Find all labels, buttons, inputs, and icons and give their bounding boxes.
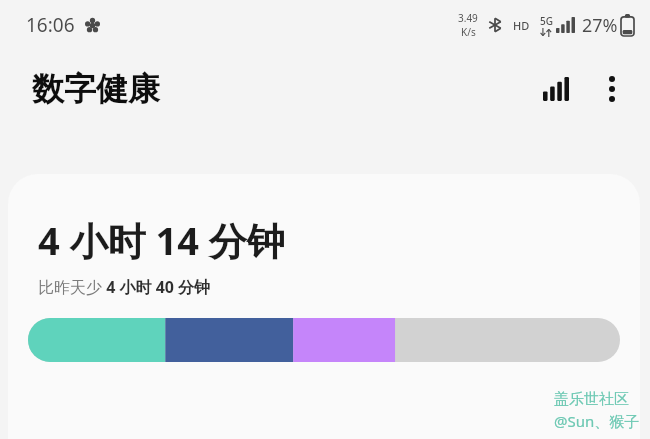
staticText: 16:06 bbox=[26, 12, 75, 38]
staticText: HD bbox=[513, 18, 530, 33]
staticText: @Sun、猴子 bbox=[554, 411, 640, 431]
staticText: K/s bbox=[461, 25, 476, 39]
staticText: 比昨天少 4 小时 40 分钟 bbox=[38, 276, 211, 298]
button[interactable]: 4 小时 14 分钟 bbox=[8, 174, 640, 439]
staticText: 数字健康 bbox=[32, 69, 160, 109]
staticText: 5G bbox=[540, 14, 553, 28]
button[interactable]: Usage statistics bbox=[532, 65, 580, 113]
staticText: 4 小时 14 分钟 bbox=[38, 214, 285, 266]
button[interactable]: More options bbox=[588, 65, 636, 113]
staticText: 盖乐世社区 bbox=[554, 390, 629, 409]
staticText: 27% bbox=[582, 13, 618, 38]
staticText: 3.49 bbox=[458, 11, 478, 25]
